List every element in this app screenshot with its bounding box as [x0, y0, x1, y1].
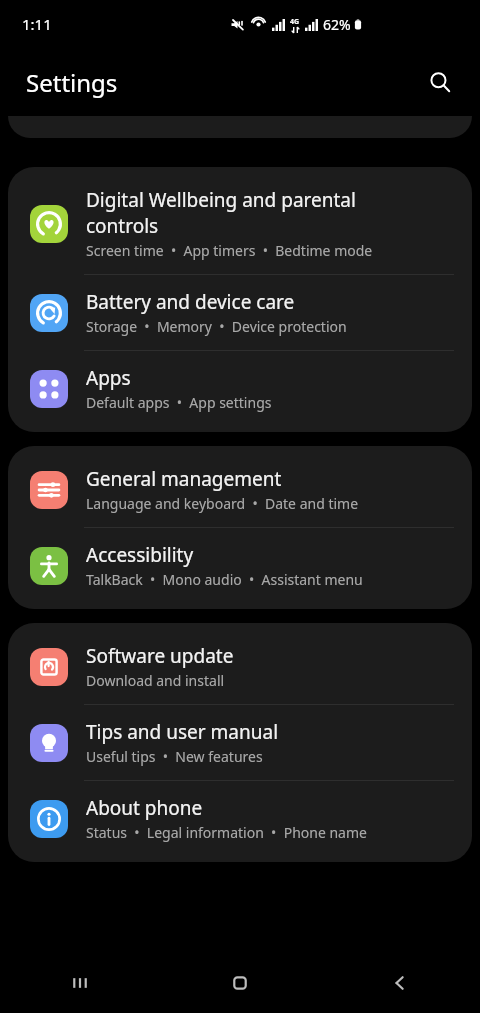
staticText: Battery and device care: [86, 289, 295, 315]
button[interactable]: About phone: [8, 781, 472, 856]
button[interactable]: Accessibility: [8, 528, 472, 603]
button[interactable]: Recents: [0, 953, 160, 1013]
staticText: Software update: [86, 643, 234, 669]
staticText: Apps: [86, 365, 131, 391]
staticText: Storage • Memory • Device protection: [86, 317, 347, 336]
staticText: 62%: [323, 15, 351, 34]
staticText: General management: [86, 466, 282, 492]
staticText: Useful tips • New features: [86, 747, 263, 766]
button[interactable]: Software update: [8, 629, 472, 705]
staticText: 4G: [290, 17, 300, 27]
staticText: Digital Wellbeing and parental controls: [86, 187, 356, 239]
button[interactable]: [8, 116, 472, 138]
staticText: Settings: [26, 66, 118, 99]
button[interactable]: Search: [418, 60, 462, 104]
button[interactable]: Apps: [8, 351, 472, 426]
staticText: Default apps • App settings: [86, 393, 272, 412]
button[interactable]: Home: [160, 953, 320, 1013]
staticText: Screen time • App timers • Bedtime mode: [86, 241, 373, 260]
staticText: Status • Legal information • Phone name: [86, 823, 367, 842]
staticText: Accessibility: [86, 542, 194, 568]
button[interactable]: Tips and user manual: [8, 705, 472, 781]
staticText: Tips and user manual: [86, 719, 279, 745]
staticText: 1:11: [22, 14, 52, 34]
button[interactable]: Back: [320, 953, 480, 1013]
button[interactable]: Battery and device care: [8, 275, 472, 351]
staticText: TalkBack • Mono audio • Assistant menu: [86, 570, 363, 589]
button[interactable]: General management: [8, 452, 472, 528]
button[interactable]: Digital Wellbeing and parental controls: [8, 173, 472, 275]
staticText: About phone: [86, 795, 203, 821]
staticText: Download and install: [86, 671, 225, 690]
staticText: Language and keyboard • Date and time: [86, 494, 359, 513]
